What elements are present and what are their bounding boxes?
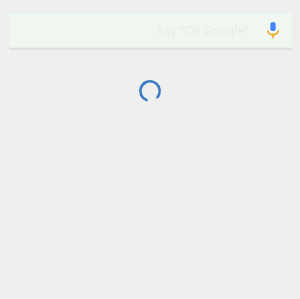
button[interactable]: Say "Ok Google" (8, 12, 293, 48)
staticText: Say "Ok Google" (157, 22, 249, 38)
button[interactable]: Voice search (262, 19, 284, 41)
